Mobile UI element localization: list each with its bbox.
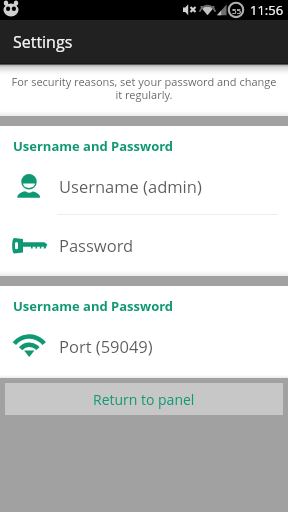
staticText: 55 [232, 5, 242, 16]
staticText: Settings [13, 31, 73, 53]
button[interactable]: Return to panel [5, 383, 283, 415]
staticText: For security reasons, set your password … [11, 74, 277, 102]
staticText: Port (59049) [59, 335, 153, 357]
other: Port [0, 328, 59, 364]
staticText: Password [59, 234, 134, 256]
staticText: Username and Password [13, 137, 174, 155]
other: Password [0, 227, 59, 263]
button[interactable]: Port [0, 316, 288, 375]
button[interactable]: User name [0, 156, 288, 215]
staticText: Return to panel [93, 390, 195, 409]
staticText: Username (admin) [59, 175, 202, 197]
button[interactable]: Password [0, 215, 288, 274]
other: User name [0, 168, 59, 204]
staticText: Username and Password [13, 297, 174, 315]
staticText: 11:56 [250, 1, 284, 19]
